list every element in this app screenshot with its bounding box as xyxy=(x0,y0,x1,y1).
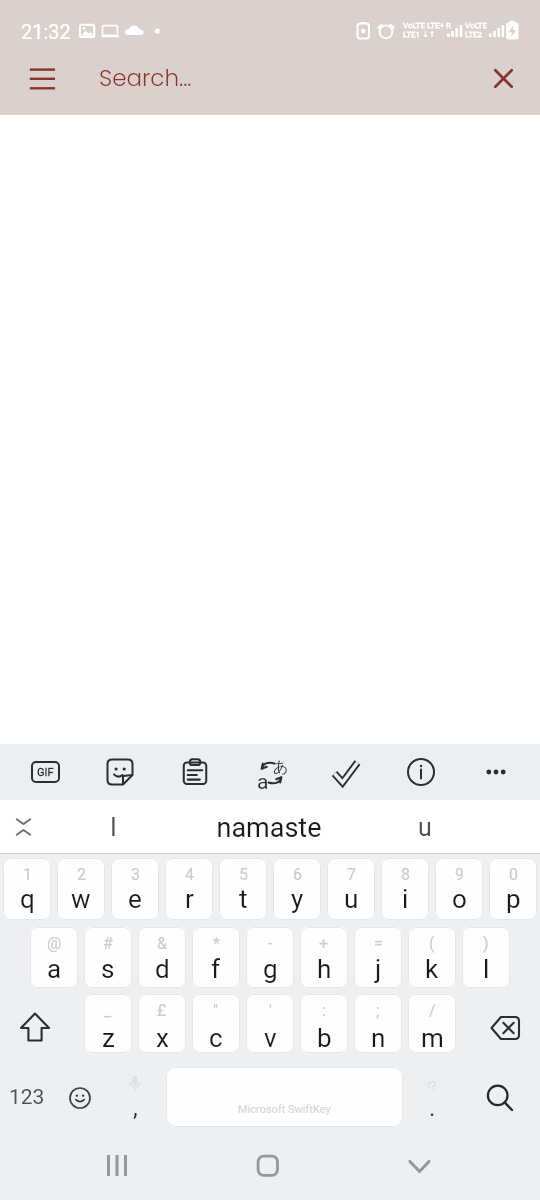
button[interactable]: Collapse suggestions xyxy=(0,800,47,853)
button[interactable]: Open navigation menu xyxy=(14,56,70,115)
staticText: m xyxy=(421,1023,444,1053)
button[interactable]: ) xyxy=(462,927,510,988)
button[interactable]: , xyxy=(115,1094,155,1134)
staticText: p xyxy=(506,884,521,914)
button[interactable]: 8 xyxy=(381,858,429,920)
button[interactable]: Emoji xyxy=(56,1074,104,1122)
staticText: / xyxy=(429,1001,436,1020)
button[interactable]: Shift xyxy=(8,1000,62,1054)
button[interactable]: Translate xyxy=(243,744,297,800)
staticText: 2 xyxy=(77,865,86,884)
staticText: h xyxy=(317,954,332,984)
staticText: VoLTE LTE+ R xyxy=(403,21,452,30)
button[interactable]: & xyxy=(138,927,186,988)
staticText: I xyxy=(110,813,117,842)
button[interactable]: Hide keyboard xyxy=(395,1145,445,1200)
button[interactable]: 4 xyxy=(165,858,213,920)
staticText: v xyxy=(264,1023,277,1053)
button[interactable]: 2 xyxy=(57,858,105,920)
staticText: n xyxy=(371,1023,386,1053)
staticText: あ xyxy=(273,758,289,777)
staticText: * xyxy=(213,934,220,953)
button[interactable]: . xyxy=(412,1094,452,1134)
staticText: l xyxy=(483,954,490,984)
staticText: d xyxy=(155,954,170,984)
button[interactable]: : xyxy=(300,994,348,1053)
staticText: 8 xyxy=(401,865,410,884)
staticText: w xyxy=(71,884,91,914)
staticText: LTE2 xyxy=(465,30,483,39)
button[interactable]: + xyxy=(300,927,348,988)
button[interactable]: ' xyxy=(246,994,294,1053)
staticText: + xyxy=(319,934,329,953)
button[interactable]: Search xyxy=(472,1072,526,1126)
staticText: 4 xyxy=(185,865,194,884)
staticText: r xyxy=(185,884,194,914)
button[interactable]: 0 xyxy=(489,858,537,920)
staticText: o xyxy=(452,884,467,914)
button[interactable]: 7 xyxy=(327,858,375,920)
staticText: 6 xyxy=(293,865,302,884)
staticText: x xyxy=(156,1023,169,1053)
staticText: j xyxy=(375,954,382,984)
button[interactable]: u xyxy=(347,800,503,853)
staticText: a xyxy=(47,954,62,984)
staticText: 5 xyxy=(239,865,248,884)
staticText: q xyxy=(20,884,35,914)
button[interactable]: Microsoft SwiftKey xyxy=(166,1067,403,1127)
button[interactable]: 123 xyxy=(0,1067,54,1127)
button[interactable]: Recent apps xyxy=(92,1145,142,1200)
button[interactable]: _ xyxy=(84,994,132,1053)
button[interactable]: namaste xyxy=(191,800,347,853)
staticText: _ xyxy=(104,1001,112,1020)
button[interactable]: GIF xyxy=(18,744,72,800)
button[interactable]: Close search xyxy=(476,56,532,115)
staticText: u xyxy=(418,813,432,842)
staticText: £ xyxy=(157,1001,167,1020)
staticText: LTE1 ↓↑ xyxy=(403,30,436,39)
staticText: t xyxy=(239,884,248,914)
button[interactable]: = xyxy=(354,927,402,988)
staticText: z xyxy=(102,1023,115,1053)
button[interactable]: Editor xyxy=(319,744,373,800)
button[interactable]: More options xyxy=(469,744,523,800)
button[interactable]: 5 xyxy=(219,858,267,920)
button[interactable]: Stickers xyxy=(93,744,147,800)
button[interactable]: Home xyxy=(243,1145,293,1200)
staticText: " xyxy=(213,1001,219,1020)
staticText: s xyxy=(101,954,115,984)
button[interactable]: 6 xyxy=(273,858,321,920)
button[interactable]: £ xyxy=(138,994,186,1053)
button[interactable]: # xyxy=(84,927,132,988)
button[interactable]: 9 xyxy=(435,858,483,920)
staticText: ' xyxy=(269,1001,272,1020)
staticText: e xyxy=(128,884,142,914)
button[interactable]: 1 xyxy=(3,858,51,920)
staticText: u xyxy=(344,884,359,914)
staticText: ; xyxy=(376,1001,380,1020)
staticText: - xyxy=(268,934,273,953)
button[interactable]: ( xyxy=(408,927,456,988)
button[interactable]: @ xyxy=(30,927,78,988)
staticText: c xyxy=(209,1023,223,1053)
staticText: 1 xyxy=(23,865,32,884)
staticText: VoLTE xyxy=(465,21,488,30)
button[interactable]: 3 xyxy=(111,858,159,920)
staticText: k xyxy=(425,954,439,984)
button[interactable]: Backspace xyxy=(479,1001,533,1055)
staticText: = xyxy=(374,934,383,953)
button[interactable]: - xyxy=(246,927,294,988)
staticText: f xyxy=(211,954,221,984)
staticText: !? xyxy=(427,1078,437,1093)
button[interactable]: / xyxy=(408,994,456,1053)
button[interactable]: Info xyxy=(394,744,448,800)
staticText: 0 xyxy=(509,865,518,884)
button[interactable]: ; xyxy=(354,994,402,1053)
staticText: b xyxy=(317,1023,332,1053)
button[interactable]: Clipboard xyxy=(168,744,222,800)
button[interactable]: * xyxy=(192,927,240,988)
staticText: ( xyxy=(429,934,435,953)
button[interactable]: I xyxy=(36,800,191,853)
staticText: . xyxy=(429,1094,436,1122)
button[interactable]: " xyxy=(192,994,240,1053)
